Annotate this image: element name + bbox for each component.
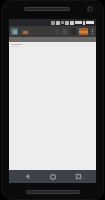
button[interactable]: Open item <box>21 29 29 35</box>
button[interactable]: More options <box>90 26 95 37</box>
button[interactable]: Home <box>46 170 60 183</box>
button[interactable]: Recent apps <box>71 170 85 183</box>
button[interactable]: Back <box>20 170 34 183</box>
button[interactable]: Tabs <box>11 28 18 35</box>
button[interactable]: Selected tool <box>79 28 88 35</box>
